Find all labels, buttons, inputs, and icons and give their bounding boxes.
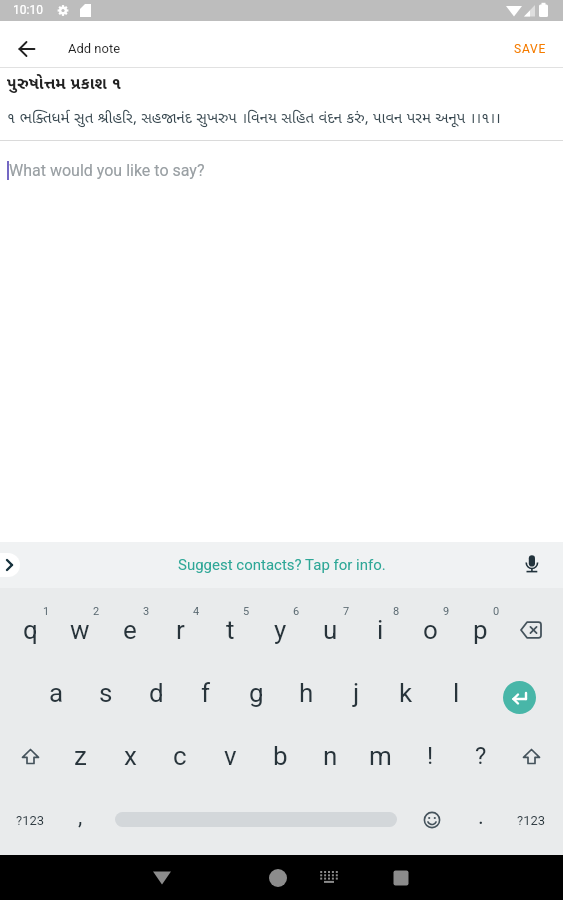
button[interactable]: z [55, 727, 105, 785]
staticText: Add note [68, 41, 121, 56]
button[interactable] [506, 601, 556, 659]
staticText: 2 [93, 605, 100, 618]
button[interactable] [7, 29, 47, 69]
staticText: ?123 [16, 813, 45, 828]
staticText: પુરુષોત્તમ પ્રકાશ ૧ [7, 71, 122, 93]
button[interactable] [506, 727, 556, 785]
staticText: f [201, 678, 211, 708]
button[interactable] [5, 727, 55, 785]
button[interactable]: f [181, 664, 231, 722]
staticText: . [478, 804, 484, 830]
button[interactable]: What would you like to say? [0, 145, 563, 195]
staticText: p [473, 615, 488, 645]
button[interactable]: x [105, 727, 155, 785]
button[interactable]: c [155, 727, 205, 785]
staticText: x [124, 741, 137, 771]
staticText: u [323, 615, 338, 645]
button[interactable]: o [405, 601, 455, 659]
staticText: g [249, 678, 264, 708]
staticText: t [226, 615, 235, 645]
staticText: 9 [443, 605, 450, 618]
staticText: SAVE [514, 42, 547, 56]
button[interactable]: g [231, 664, 281, 722]
staticText: c [173, 741, 187, 771]
button[interactable]: . [456, 788, 506, 846]
staticText: , [78, 804, 83, 830]
staticText: z [74, 741, 87, 771]
staticText: e [123, 615, 137, 645]
staticText: ! [427, 742, 434, 770]
button[interactable]: w [55, 601, 105, 659]
button[interactable]: Suggest contacts? Tap for info. [0, 542, 563, 588]
button[interactable] [256, 855, 300, 900]
button[interactable]: e [105, 601, 155, 659]
button[interactable] [494, 672, 544, 722]
button[interactable]: u [305, 601, 355, 659]
staticText: 8 [393, 605, 400, 618]
staticText: 7 [343, 605, 350, 618]
button[interactable] [379, 855, 423, 900]
staticText: 6 [293, 605, 300, 618]
staticText: k [399, 678, 413, 708]
button[interactable]: t [205, 601, 255, 659]
button[interactable]: h [281, 664, 331, 722]
button[interactable] [516, 549, 548, 581]
staticText: 4 [193, 605, 200, 618]
staticText: Suggest contacts? Tap for info. [178, 556, 386, 574]
staticText: o [423, 615, 438, 645]
staticText: j [353, 678, 360, 708]
button[interactable]: v [205, 727, 255, 785]
staticText: ? [475, 742, 487, 770]
staticText: i [377, 615, 384, 645]
button[interactable]: ! [405, 727, 455, 785]
button[interactable] [0, 553, 20, 577]
button[interactable]: i [355, 601, 405, 659]
button[interactable]: , [55, 788, 105, 846]
button[interactable]: b [255, 727, 305, 785]
button[interactable]: s [81, 664, 131, 722]
staticText: 0 [493, 605, 500, 618]
staticText: r [176, 615, 185, 645]
staticText: v [224, 741, 237, 771]
button[interactable] [407, 791, 457, 849]
button[interactable]: j [331, 664, 381, 722]
button[interactable]: p [455, 601, 505, 659]
staticText: b [273, 741, 288, 771]
staticText: ૧ ભક્તિધર્મ સુત શ્રીહરિ, સહજાનંદ સુખરુપ … [7, 107, 501, 127]
staticText: q [23, 615, 38, 645]
button[interactable]: m [355, 727, 405, 785]
staticText: l [453, 678, 460, 708]
staticText: w [70, 615, 90, 645]
button[interactable]: SAVE [498, 25, 563, 72]
button[interactable]: l [431, 664, 481, 722]
staticText: What would you like to say? [9, 161, 205, 180]
staticText: d [149, 678, 164, 708]
staticText: h [299, 678, 314, 708]
button[interactable]: y [255, 601, 305, 659]
staticText: 10:10 [13, 3, 43, 17]
staticText: s [99, 678, 113, 708]
button[interactable]: ?123 [5, 791, 55, 849]
button[interactable]: r [155, 601, 205, 659]
button[interactable]: k [381, 664, 431, 722]
staticText: 3 [143, 605, 150, 618]
button[interactable] [307, 855, 351, 900]
staticText: 1 [43, 605, 50, 618]
staticText: 5 [243, 605, 250, 618]
staticText: n [323, 741, 338, 771]
staticText: m [369, 741, 392, 771]
staticText: y [274, 615, 287, 645]
button[interactable] [140, 855, 184, 900]
button[interactable]: a [31, 664, 81, 722]
button[interactable]: n [305, 727, 355, 785]
staticText: a [49, 678, 64, 708]
button[interactable]: d [131, 664, 181, 722]
staticText: ?123 [517, 813, 546, 828]
button[interactable]: q [5, 601, 55, 659]
button[interactable]: ? [456, 727, 506, 785]
button[interactable]: ?123 [506, 791, 556, 849]
